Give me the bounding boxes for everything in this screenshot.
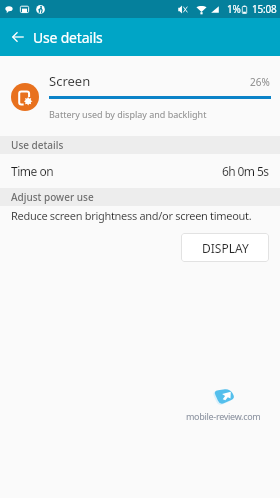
staticText: Time on <box>11 163 54 179</box>
staticText: Adjust power use <box>11 190 94 204</box>
staticText: Use details <box>33 28 103 47</box>
button[interactable]: DISPLAY <box>181 233 269 262</box>
staticText: Use details <box>11 138 64 152</box>
button[interactable]: Time on <box>0 154 280 188</box>
staticText: 1% <box>227 2 241 16</box>
staticText: 15:08 <box>252 2 277 16</box>
staticText: 6h 0m 5s <box>222 163 269 179</box>
staticText: Battery used by display and backlight <box>49 108 207 120</box>
staticText: mobile-review.com <box>186 410 261 422</box>
button[interactable]: Back <box>0 18 33 56</box>
staticText: DISPLAY <box>202 240 249 256</box>
staticText: Reduce screen brightness and/or screen t… <box>11 208 252 223</box>
staticText: Screen <box>49 72 91 90</box>
staticText: 26% <box>250 75 270 89</box>
